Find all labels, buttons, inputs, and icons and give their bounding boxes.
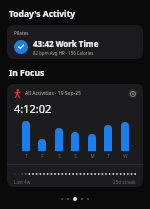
staticText: 43:42 Work Time bbox=[33, 38, 99, 49]
staticText: S bbox=[58, 153, 61, 159]
staticText: T bbox=[25, 153, 28, 159]
staticText: W bbox=[123, 153, 128, 159]
staticText: 4:12:02 bbox=[14, 101, 52, 116]
staticText: S bbox=[74, 153, 77, 159]
staticText: 82 bpm Avg HR · 156 Calories bbox=[33, 50, 94, 56]
staticText: Today's Activity bbox=[9, 8, 76, 20]
button[interactable]: Pilates bbox=[7, 25, 143, 59]
button[interactable]: All Activities · 19 Sep-25 bbox=[7, 84, 143, 187]
staticText: All Activities · 19 Sep-25 bbox=[25, 90, 81, 97]
staticText: T bbox=[107, 153, 110, 159]
staticText: 25d streak bbox=[113, 179, 136, 185]
staticText: Pilates bbox=[14, 30, 29, 36]
staticText: M bbox=[90, 153, 95, 159]
staticText: In Focus bbox=[9, 67, 45, 79]
staticText: F bbox=[41, 153, 44, 159]
staticText: Last 4w bbox=[14, 179, 31, 185]
button[interactable]: Activity details bbox=[128, 89, 137, 98]
